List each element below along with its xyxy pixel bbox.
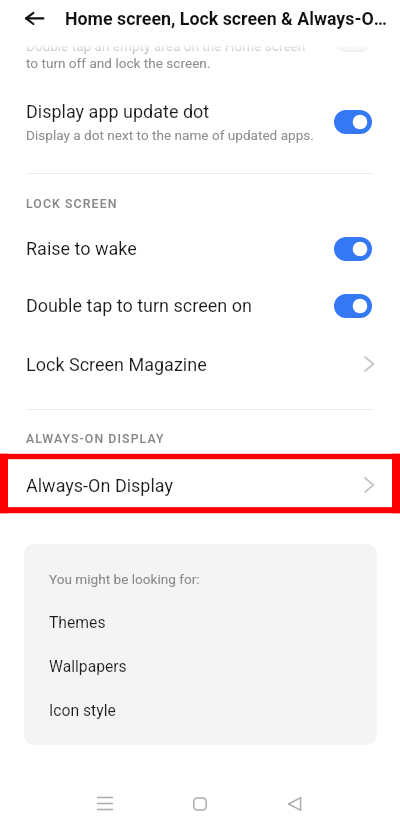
staticText: Themes	[49, 613, 106, 631]
staticText: Raise to wake	[26, 238, 137, 259]
button[interactable]	[0, 456, 400, 514]
staticText: Home screen, Lock screen & Always-On Dis…	[65, 8, 392, 29]
staticText: Double tap to turn screen on	[26, 295, 252, 316]
button[interactable]	[0, 2, 400, 79]
button[interactable]	[0, 220, 400, 278]
button[interactable]: Display app update dot	[334, 110, 372, 134]
button[interactable]: Navigate up	[15, 0, 55, 39]
button[interactable]: Recent apps	[75, 779, 135, 828]
button[interactable]	[0, 335, 400, 393]
button[interactable]	[0, 278, 400, 336]
staticText: Display app update dot	[26, 101, 210, 122]
button[interactable]	[24, 605, 377, 649]
button[interactable]: Home	[170, 779, 230, 828]
button[interactable]: Raise to wake	[334, 237, 372, 261]
staticText: to turn off and lock the screen.	[26, 55, 211, 71]
staticText: Display a dot next to the name of update…	[26, 127, 314, 143]
button[interactable]: Double-tap to lock screen	[334, 28, 372, 52]
staticText: Lock Screen Magazine	[26, 354, 207, 375]
staticText: Always-On Display	[26, 475, 174, 496]
staticText: Icon style	[49, 701, 116, 719]
button[interactable]	[0, 93, 400, 157]
staticText: Double tap an empty area on the Home scr…	[26, 38, 306, 54]
button[interactable]	[24, 693, 377, 737]
button[interactable]: Back	[265, 779, 325, 828]
button[interactable]	[24, 649, 377, 693]
staticText: ALWAYS-ON DISPLAY	[26, 432, 165, 446]
staticText: Wallpapers	[49, 657, 127, 675]
staticText: You might be looking for:	[49, 571, 200, 587]
staticText: LOCK SCREEN	[26, 197, 118, 211]
staticText: Double-tap to lock screen	[26, 12, 230, 33]
button[interactable]: Double tap to turn screen on	[334, 294, 372, 318]
